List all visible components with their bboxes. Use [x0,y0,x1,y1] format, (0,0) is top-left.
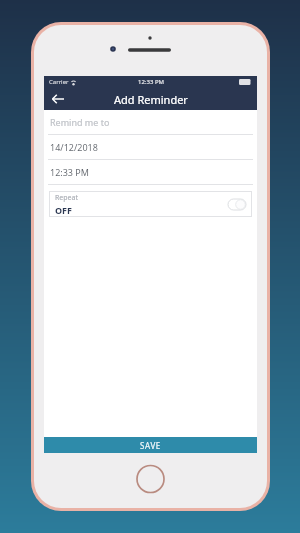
staticText: SAVE [140,440,161,451]
button[interactable]: 12:33 PM [44,160,257,185]
button[interactable]: SAVE [44,437,257,453]
button[interactable]: Back [47,88,69,110]
button[interactable]: 14/12/2018 [44,135,257,160]
staticText: 12:33 PM [50,166,89,178]
staticText: Add Reminder [114,92,188,107]
staticText: OFF [55,204,73,216]
staticText: 12:33 PM [138,78,164,86]
button[interactable]: Repeat [49,191,252,217]
button[interactable]: Toggle repeat [228,199,246,210]
staticText: 14/12/2018 [50,141,98,153]
staticText: Repeat [55,193,79,203]
staticText: Carrier [49,78,69,86]
button[interactable]: Remind me to [44,110,257,135]
staticText: Remind me to [50,116,110,128]
